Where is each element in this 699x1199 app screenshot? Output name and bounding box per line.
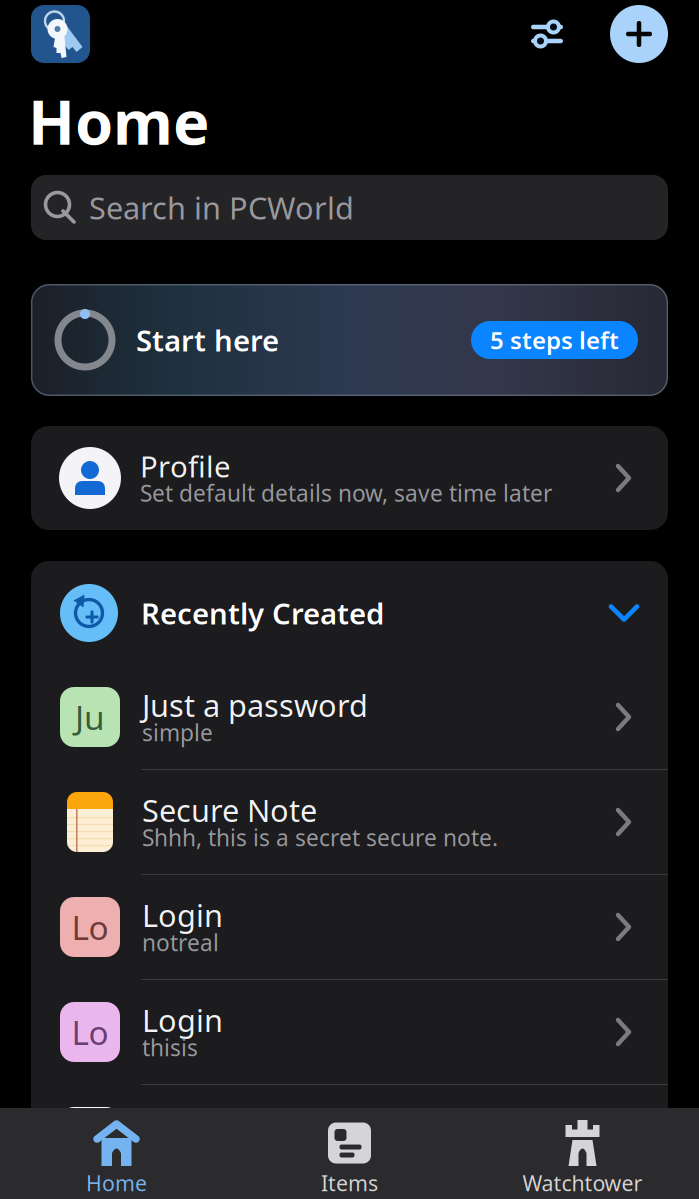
staticText: Lo xyxy=(71,905,108,949)
staticText: Watchtower xyxy=(522,1169,642,1197)
staticText: Login xyxy=(142,895,223,935)
button[interactable]: Start here xyxy=(31,284,668,396)
button[interactable]: Secure Note xyxy=(31,770,668,874)
staticText: Recently Created xyxy=(141,593,384,632)
staticText: Shhh, this is a secret secure note. xyxy=(142,822,498,852)
button[interactable]: New item xyxy=(610,5,668,63)
staticText: Set default details now, save time later xyxy=(140,478,552,508)
staticText: Home xyxy=(86,1169,147,1197)
button[interactable]: Watchtower xyxy=(466,1108,699,1199)
staticText: Profile xyxy=(140,446,231,485)
staticText: Search in PCWorld xyxy=(89,187,354,228)
staticText: notreal xyxy=(142,927,219,957)
staticText: simple xyxy=(142,717,213,747)
button[interactable]: Profile xyxy=(31,426,668,530)
button[interactable]: Filter xyxy=(519,5,575,63)
staticText: thisis xyxy=(142,1032,198,1062)
staticText: Login xyxy=(142,1000,223,1040)
staticText: Home xyxy=(28,80,210,162)
button[interactable]: Recently Created xyxy=(31,561,668,665)
staticText: Items xyxy=(321,1169,378,1197)
button[interactable]: Ju xyxy=(31,665,668,769)
staticText: 5 steps left xyxy=(490,324,619,356)
button[interactable]: Items xyxy=(233,1108,466,1199)
staticText: Secure Note xyxy=(142,790,317,830)
staticText: Lo xyxy=(71,1010,108,1054)
button[interactable]: Lo xyxy=(31,980,668,1084)
button[interactable]: Search in PCWorld xyxy=(31,175,668,240)
staticText: Start here xyxy=(136,320,279,359)
staticText: Ju xyxy=(75,695,105,739)
button[interactable]: Home xyxy=(0,1108,233,1199)
button[interactable]: Lo xyxy=(31,875,668,979)
staticText: Just a password xyxy=(142,685,368,725)
